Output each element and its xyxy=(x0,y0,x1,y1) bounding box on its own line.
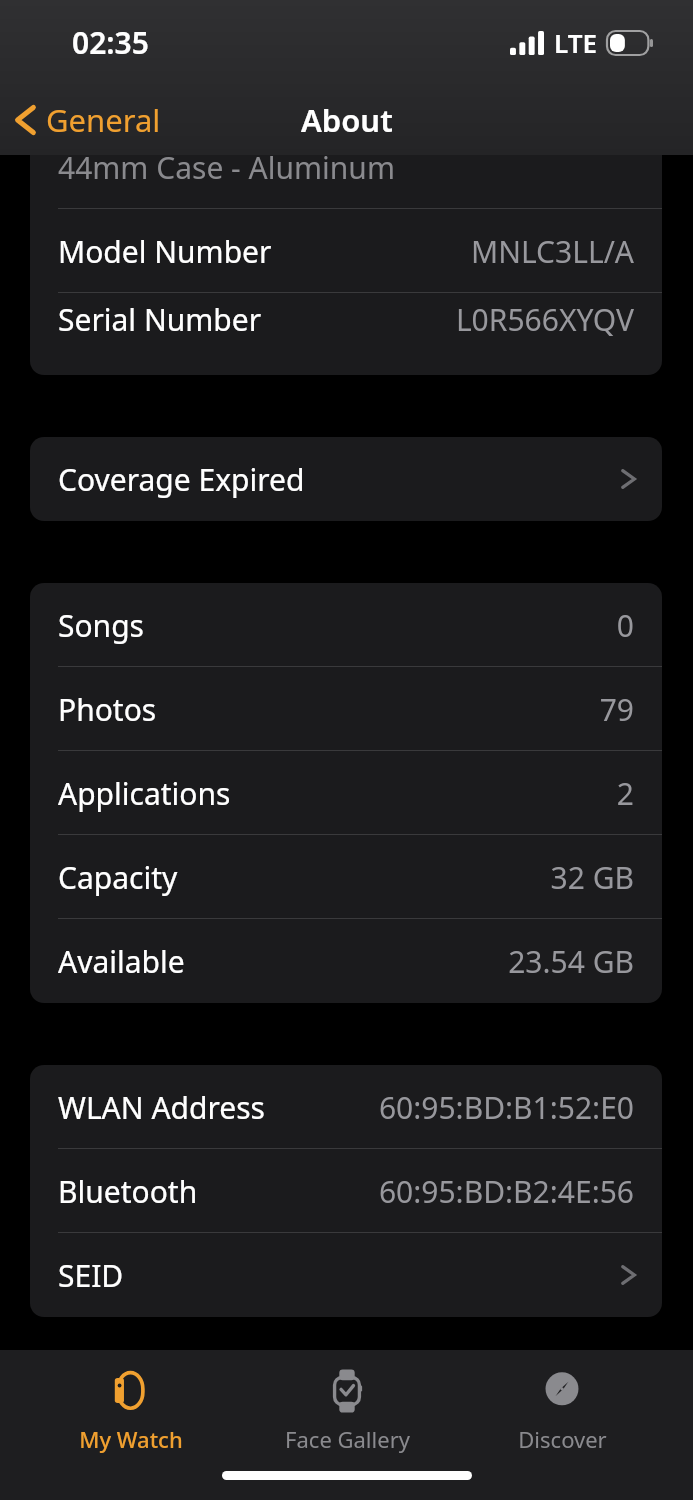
button[interactable]: Bluetooth xyxy=(30,1149,662,1233)
staticText: LTE xyxy=(554,25,597,60)
button[interactable]: My Watch xyxy=(46,1350,216,1460)
staticText: 0 xyxy=(616,605,634,646)
staticText: WLAN Address xyxy=(58,1087,265,1128)
staticText: L0R566XYQV xyxy=(455,299,634,340)
staticText: About xyxy=(301,99,393,141)
staticText: Coverage Expired xyxy=(58,459,305,500)
staticText: Applications xyxy=(58,773,231,814)
button[interactable]: General xyxy=(14,99,161,141)
staticText: Photos xyxy=(58,689,157,730)
staticText: MNLC3LL/A xyxy=(470,231,634,272)
button[interactable]: Discover xyxy=(477,1350,647,1460)
staticText: 79 xyxy=(599,689,634,730)
button[interactable]: Coverage Expired xyxy=(30,437,662,521)
staticText: 44mm Case - Aluminum xyxy=(58,155,395,188)
other: Cellular signal xyxy=(510,31,544,55)
button[interactable]: Capacity xyxy=(30,835,662,919)
button[interactable]: Photos xyxy=(30,667,662,751)
button[interactable]: WLAN Address xyxy=(30,1065,662,1149)
staticText: General xyxy=(46,99,161,141)
button[interactable]: Available xyxy=(30,919,662,1003)
staticText: Face Gallery xyxy=(285,1424,410,1454)
staticText: Serial Number xyxy=(58,299,262,340)
staticText: Songs xyxy=(58,605,144,646)
staticText: Bluetooth xyxy=(58,1171,198,1212)
staticText: Model Number xyxy=(58,231,272,272)
other: Battery xyxy=(607,31,653,55)
staticText: 2 xyxy=(616,773,634,814)
button[interactable]: Songs xyxy=(30,583,662,667)
button[interactable]: Applications xyxy=(30,751,662,835)
staticText: SEID xyxy=(58,1255,124,1296)
staticText: Discover xyxy=(518,1424,607,1454)
staticText: 32 GB xyxy=(550,857,634,898)
staticText: My Watch xyxy=(79,1424,183,1454)
staticText: 60:95:BD:B1:52:E0 xyxy=(378,1087,634,1128)
button[interactable]: 44mm Case - Aluminum xyxy=(30,155,662,209)
button[interactable]: Model Number xyxy=(30,209,662,293)
staticText: Capacity xyxy=(58,857,178,898)
staticText: Available xyxy=(58,941,185,982)
staticText: 02:35 xyxy=(72,22,149,63)
staticText: 23.54 GB xyxy=(508,941,634,982)
staticText: 60:95:BD:B2:4E:56 xyxy=(378,1171,634,1212)
button[interactable]: Face Gallery xyxy=(262,1350,432,1460)
button[interactable]: SEID xyxy=(30,1233,662,1317)
button[interactable]: Serial Number xyxy=(30,293,662,345)
